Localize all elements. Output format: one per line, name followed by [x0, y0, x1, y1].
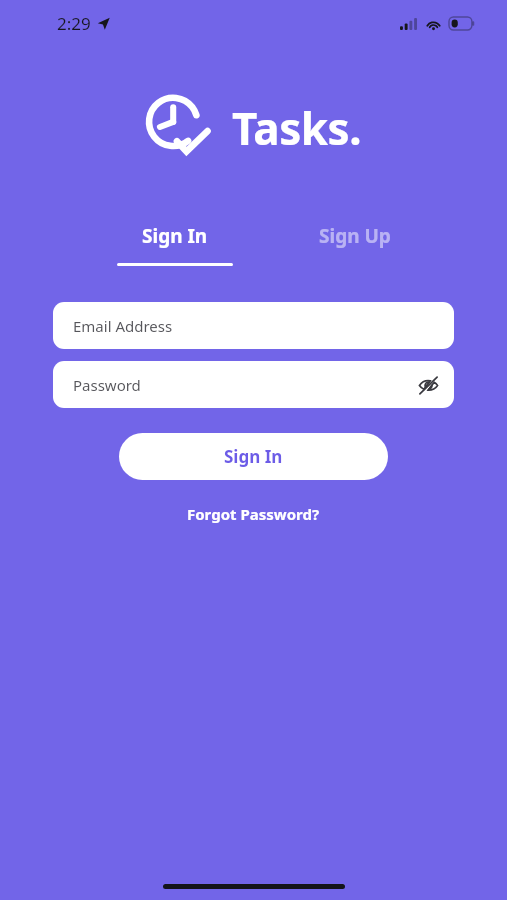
other: Tasks logo: [146, 94, 214, 162]
staticText: Sign Up: [319, 223, 391, 249]
staticText: Sign In: [224, 445, 283, 468]
button[interactable]: Show password: [410, 367, 446, 403]
button[interactable]: Sign In: [103, 219, 247, 270]
button[interactable]: Sign In: [119, 433, 388, 480]
button[interactable]: Sign Up: [305, 219, 405, 253]
staticText: Email Address: [73, 316, 173, 336]
staticText: Tasks.: [232, 98, 362, 158]
staticText: Password: [73, 375, 141, 395]
button[interactable]: Forgot Password?: [171, 498, 336, 530]
staticText: Forgot Password?: [187, 504, 320, 524]
staticText: 2:29: [57, 12, 91, 35]
button[interactable]: Password: [53, 361, 454, 408]
staticText: Sign In: [142, 223, 208, 249]
button[interactable]: Email Address: [53, 302, 454, 349]
